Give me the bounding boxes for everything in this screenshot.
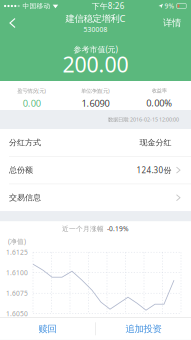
button[interactable]: 总份额 xyxy=(0,157,191,184)
staticText: 近一个月涨幅 xyxy=(62,225,104,233)
staticText: 盈亏情况(元) xyxy=(17,87,46,94)
staticText: 追加投资 xyxy=(125,323,161,335)
staticText: 0.00 xyxy=(23,97,41,109)
staticText: 参考市值(元) xyxy=(73,44,117,55)
staticText: 200.00 xyxy=(62,50,128,78)
staticText: 数据日期: 2016-02-15 12:00:00 xyxy=(108,116,179,123)
staticText: 总份额 xyxy=(9,165,33,175)
button[interactable]: 追加投资 xyxy=(96,318,191,340)
staticText: 下午8:26 xyxy=(92,1,125,11)
staticText: 中国移动 xyxy=(22,2,50,10)
staticText: 1.6125 xyxy=(6,248,28,257)
button[interactable]: Back xyxy=(3,12,22,34)
staticText: 530008 xyxy=(83,25,107,34)
staticText: 1.6100 xyxy=(6,268,28,277)
staticText: 分红方式 xyxy=(9,138,41,147)
staticText: 1.6090 xyxy=(81,97,109,109)
staticText: 1.6050 xyxy=(6,309,28,318)
staticText: 9% xyxy=(164,2,174,10)
staticText: -0.19% xyxy=(107,224,129,233)
staticText: 单位净值(元) xyxy=(81,87,110,94)
staticText: 赎回 xyxy=(39,323,57,335)
staticText: 收益率 xyxy=(152,87,167,94)
button[interactable]: 详情 xyxy=(156,12,188,34)
staticText: 124.30份 xyxy=(136,165,171,175)
staticText: 0.00% xyxy=(146,97,172,109)
staticText: 交易信息 xyxy=(9,193,41,203)
staticText: 现金分红 xyxy=(139,138,171,147)
button[interactable]: 分红方式 xyxy=(0,129,191,156)
staticText: 详情 xyxy=(163,17,181,29)
button[interactable]: 赎回 xyxy=(0,318,95,340)
staticText: 1.6075 xyxy=(6,289,28,298)
button[interactable]: 交易信息 xyxy=(0,184,191,211)
staticText: (净值) xyxy=(8,237,26,246)
staticText: 建信稳定增利C xyxy=(65,12,125,24)
